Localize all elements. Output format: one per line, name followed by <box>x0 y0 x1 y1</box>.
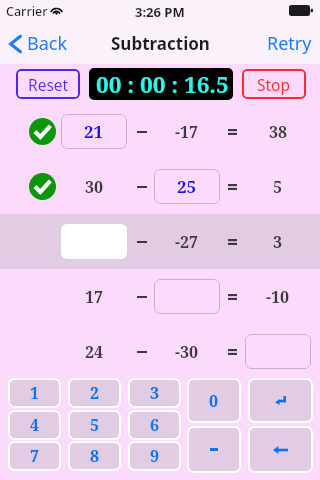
staticText: 30 <box>85 176 104 198</box>
button[interactable]: 5 <box>70 412 119 438</box>
button[interactable] <box>61 224 127 259</box>
staticText: 5 <box>273 176 283 198</box>
button[interactable]: 17 <box>0 269 320 324</box>
staticText: 9 <box>150 445 160 467</box>
staticText: Reset <box>28 74 69 95</box>
staticText: -27 <box>175 231 199 253</box>
staticText: 25 <box>177 175 197 198</box>
button[interactable]: Stop <box>242 69 306 99</box>
button[interactable]: 8 <box>70 443 119 469</box>
button[interactable] <box>245 334 311 369</box>
staticText: Back <box>27 31 68 56</box>
staticText: -17 <box>175 121 199 143</box>
button[interactable]: 3 <box>130 380 179 406</box>
staticText: 5 <box>90 414 100 436</box>
button[interactable]: 30 <box>0 159 320 214</box>
button[interactable]: Reset <box>16 69 80 99</box>
staticText: 3 <box>273 231 283 253</box>
staticText: 3 <box>150 382 160 404</box>
staticText: -10 <box>266 286 290 308</box>
button[interactable]: -27 <box>0 214 320 269</box>
button[interactable]: 0 <box>189 380 239 421</box>
button[interactable]: Retry <box>267 31 320 64</box>
button[interactable]: 21 <box>61 114 127 149</box>
staticText: 00 : 00 : 16.5 <box>96 69 229 100</box>
button[interactable]: Enter <box>250 380 311 421</box>
button[interactable]: 25 <box>154 169 220 204</box>
button[interactable]: 2 <box>70 380 119 406</box>
staticText: 7 <box>30 445 40 467</box>
button[interactable]: Backspace <box>250 428 311 471</box>
staticText: 2 <box>90 382 100 404</box>
button[interactable]: 9 <box>130 443 179 469</box>
button[interactable]: 21 <box>0 104 320 159</box>
button[interactable]: 6 <box>130 412 179 438</box>
staticText: 17 <box>85 286 104 308</box>
staticText: 6 <box>150 414 160 436</box>
staticText: 1 <box>30 382 40 404</box>
staticText: Subtraction <box>111 32 210 55</box>
button[interactable]: Back <box>9 31 68 56</box>
button[interactable]: Minus sign <box>189 428 239 471</box>
staticText: 24 <box>85 341 104 363</box>
staticText: -30 <box>175 341 199 363</box>
staticText: 0 <box>209 390 219 412</box>
button[interactable]: 1 <box>10 380 59 406</box>
staticText: 4 <box>30 414 40 436</box>
button[interactable]: 24 <box>0 324 320 379</box>
staticText: 21 <box>84 120 104 143</box>
button[interactable]: 4 <box>10 412 59 438</box>
staticText: Carrier <box>6 3 48 20</box>
staticText: Stop <box>257 74 291 95</box>
button[interactable]: 7 <box>10 443 59 469</box>
button[interactable] <box>154 279 220 314</box>
staticText: 38 <box>269 121 288 143</box>
staticText: 3:26 PM <box>135 3 185 21</box>
staticText: 8 <box>90 445 100 467</box>
